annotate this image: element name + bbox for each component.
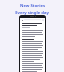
staticText: New Stories (20, 3, 45, 9)
staticText: Every single day (15, 10, 49, 16)
button[interactable]: Back (19, 15, 46, 72)
button[interactable]: Back (21, 19, 23, 21)
